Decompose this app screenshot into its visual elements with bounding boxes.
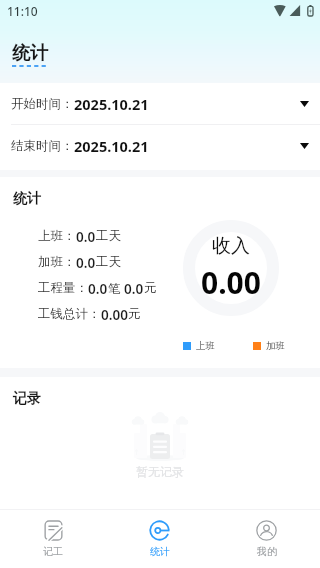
staticText: 统计 (13, 190, 41, 208)
button[interactable]: 开始时间： (0, 83, 320, 124)
staticText: 我的 (257, 545, 277, 558)
staticText: 工天 (96, 228, 121, 244)
button[interactable]: 记工 (0, 510, 106, 568)
button[interactable]: 加班 (253, 340, 285, 352)
button[interactable]: 统计 (106, 510, 213, 568)
staticText: 统计 (150, 545, 170, 558)
staticText: 结束时间： (11, 138, 74, 154)
staticText: 2025.10.21 (74, 94, 149, 114)
button[interactable]: 上班 (183, 340, 215, 352)
other: Select date (296, 96, 312, 112)
staticText: 0.00 (101, 306, 128, 324)
staticText: 0.0 (76, 228, 96, 246)
staticText: 记工 (43, 545, 63, 558)
staticText: 元 (144, 280, 157, 296)
button[interactable]: 我的 (213, 510, 320, 568)
staticText: 记录 (13, 390, 41, 408)
staticText: 0.00 (201, 262, 261, 303)
staticText: 元 (128, 306, 141, 322)
staticText: 上班 (196, 340, 215, 352)
staticText: 笔 (108, 280, 124, 297)
staticText: 工程量： (38, 280, 88, 296)
button[interactable]: 结束时间： (0, 125, 320, 166)
other: Select date (296, 138, 312, 154)
staticText: 11:10 (7, 3, 38, 19)
staticText: 统计 (12, 42, 48, 65)
staticText: 0.0 (88, 280, 108, 298)
staticText: 加班 (266, 340, 285, 352)
staticText: 加班： (38, 254, 76, 270)
staticText: 上班： (38, 228, 76, 244)
staticText: 0.0 (76, 254, 96, 272)
staticText: 工钱总计： (38, 306, 101, 322)
staticText: 收入 (212, 234, 250, 258)
staticText: 工天 (96, 254, 121, 270)
staticText: 0.0 (124, 280, 144, 298)
staticText: 暂无记录 (136, 464, 184, 479)
staticText: 2025.10.21 (74, 136, 149, 156)
staticText: 开始时间： (11, 96, 74, 112)
